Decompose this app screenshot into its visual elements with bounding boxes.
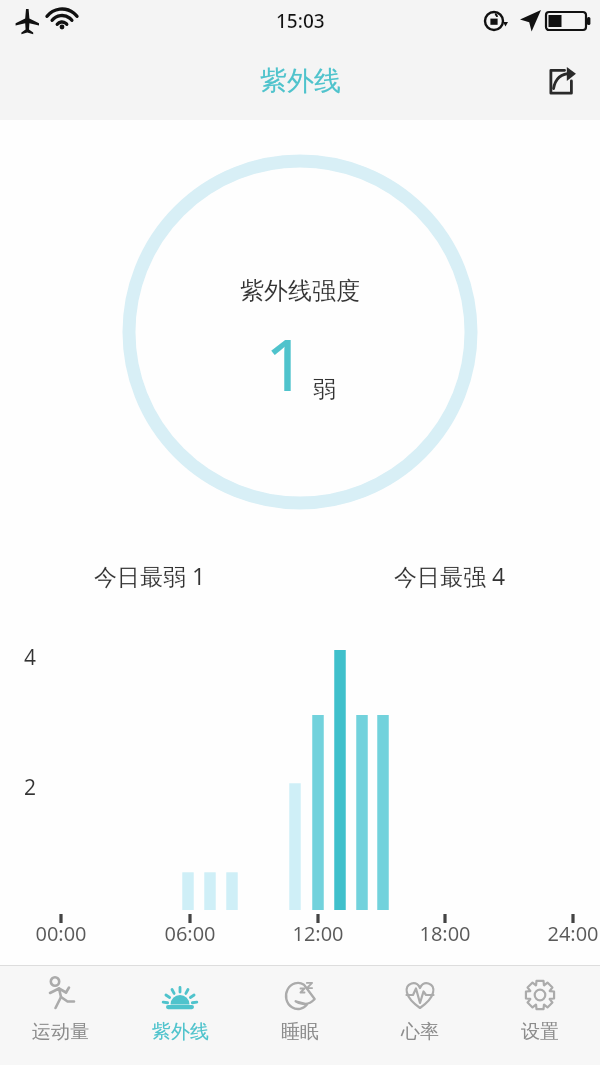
staticText: 00:00 (27, 920, 95, 947)
staticText: 紫外线 (260, 64, 341, 98)
staticText: 1 (265, 314, 307, 412)
staticText: 心率 (401, 1020, 439, 1044)
staticText: 24:00 (539, 920, 600, 947)
staticText: 今日最强 4 (394, 560, 506, 591)
staticText: 4 (24, 643, 37, 672)
button[interactable]: 设置 (480, 966, 600, 1065)
staticText: 弱 (313, 375, 336, 404)
button[interactable]: Share (534, 55, 586, 107)
staticText: 12:00 (284, 920, 352, 947)
staticText: 设置 (521, 1020, 559, 1044)
button[interactable]: 睡眠 (240, 966, 360, 1065)
staticText: 18:00 (411, 920, 479, 947)
staticText: 2 (24, 773, 37, 802)
staticText: 今日最弱 1 (94, 560, 206, 591)
staticText: 紫外线强度 (240, 276, 360, 306)
staticText: 紫外线 (152, 1020, 209, 1044)
staticText: 运动量 (32, 1020, 89, 1044)
button[interactable]: 运动量 (0, 966, 120, 1065)
button[interactable]: 心率 (360, 966, 480, 1065)
staticText: 睡眠 (281, 1020, 319, 1044)
staticText: 15:03 (276, 8, 325, 34)
button[interactable]: 紫外线 (120, 966, 240, 1065)
staticText: 06:00 (156, 920, 224, 947)
